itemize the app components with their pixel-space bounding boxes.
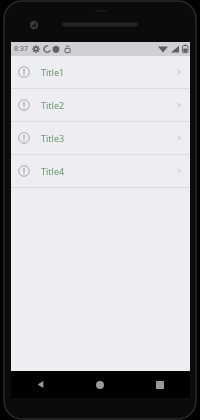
button[interactable]: Title3 [11, 122, 190, 154]
button[interactable]: Title2 [11, 89, 190, 121]
staticText: Title1 [41, 66, 65, 78]
staticText: Title3 [41, 132, 65, 144]
button[interactable]: Home [70, 371, 130, 398]
staticText: Title4 [41, 165, 65, 177]
staticText: 8:37 [14, 44, 28, 54]
button[interactable]: Title4 [11, 155, 190, 187]
button[interactable]: Back [11, 371, 70, 398]
button[interactable]: Recent apps [130, 371, 190, 398]
button[interactable]: Title1 [11, 56, 190, 88]
staticText: Title2 [41, 99, 65, 111]
